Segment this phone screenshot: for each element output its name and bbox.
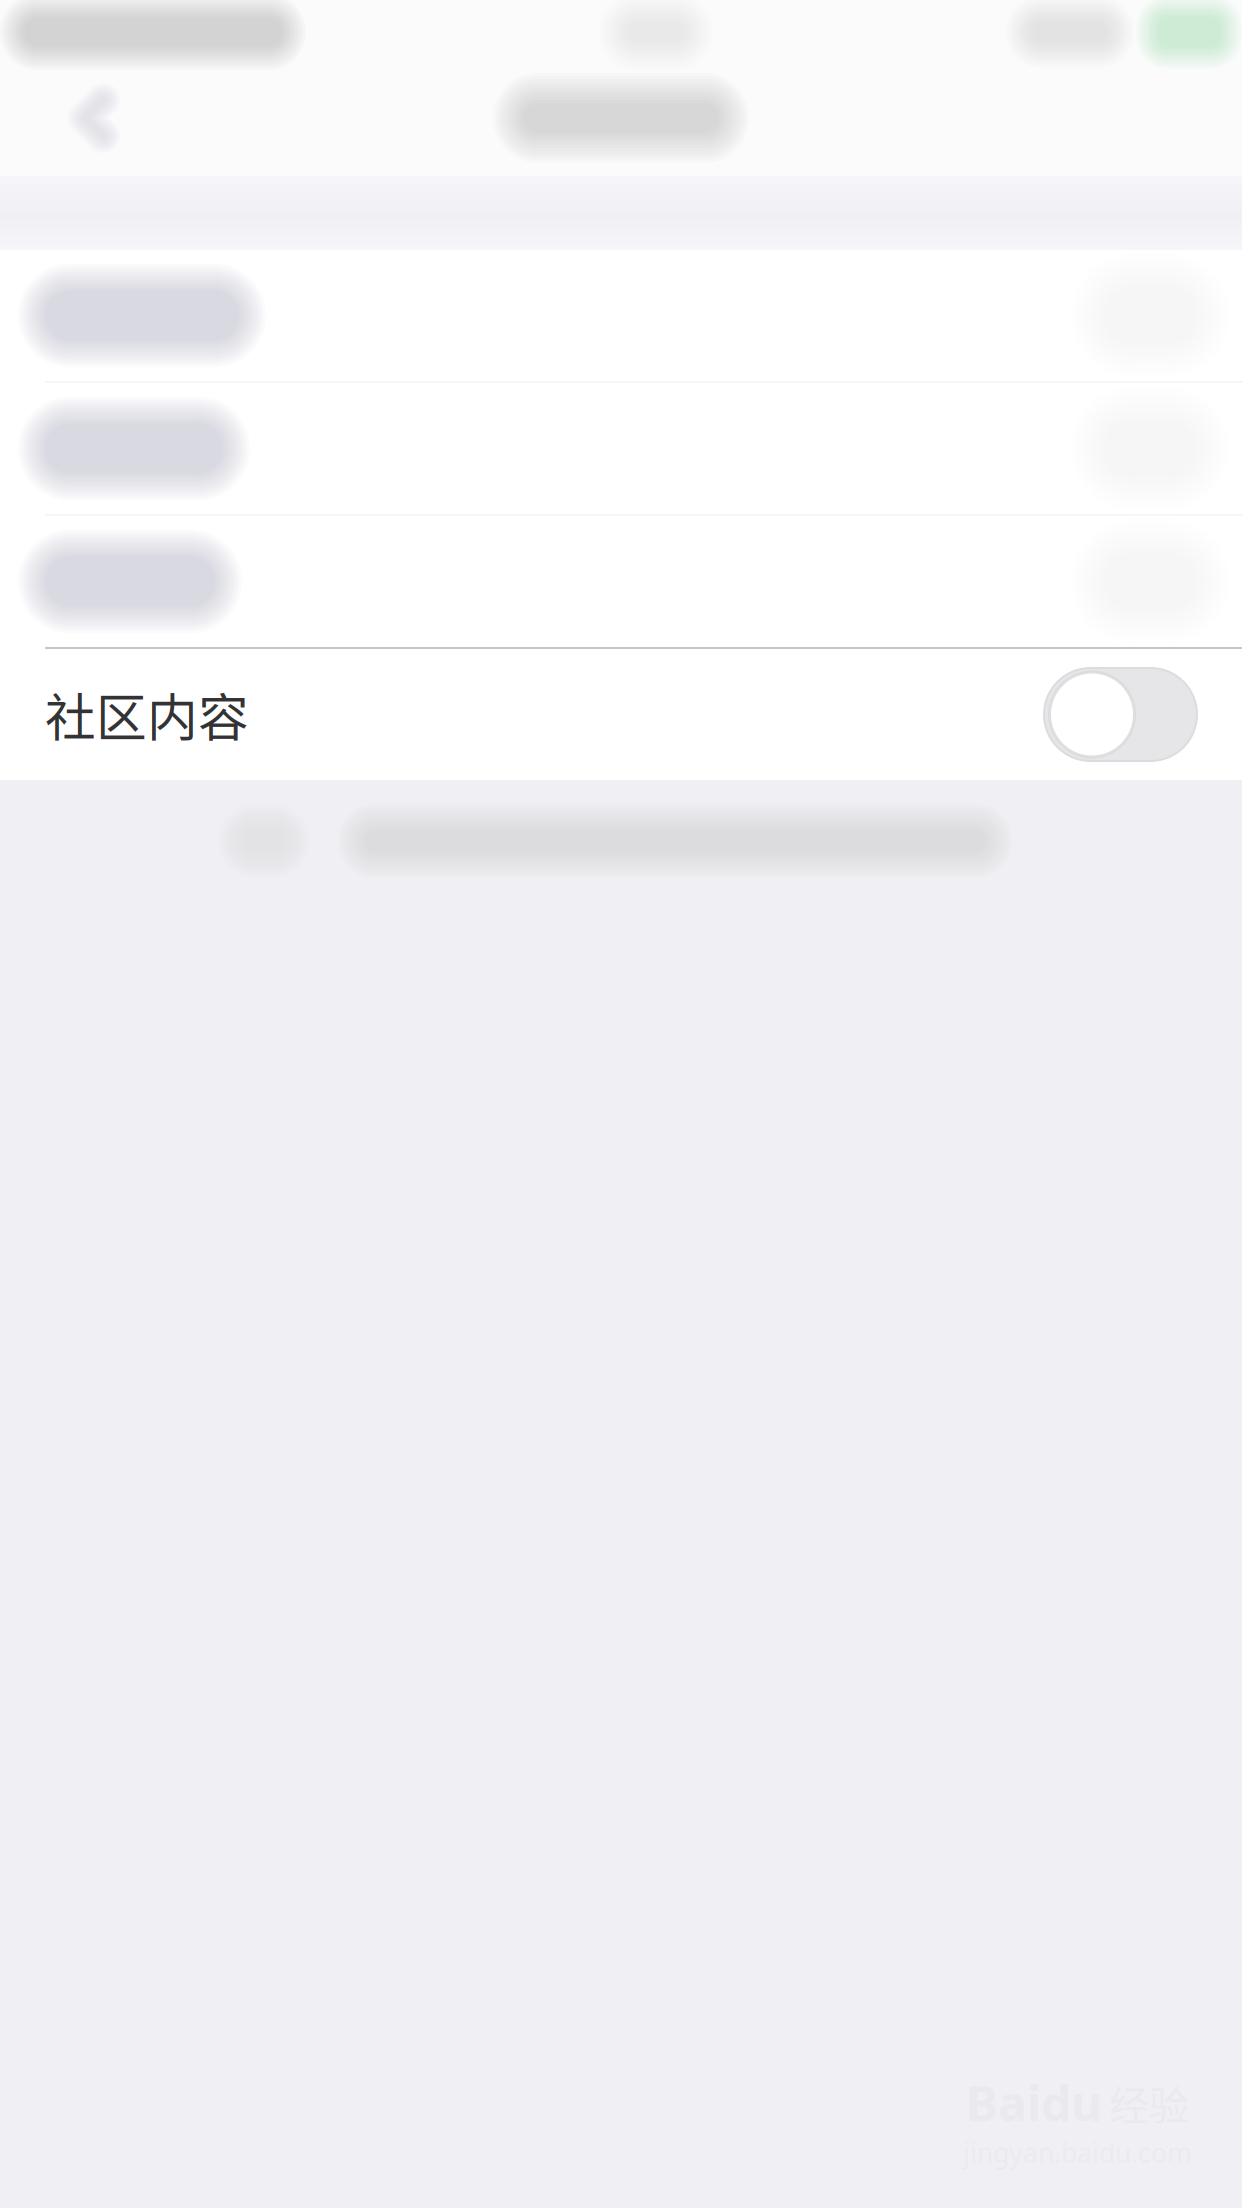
button[interactable] (0, 250, 1242, 381)
button[interactable] (0, 383, 1242, 514)
button[interactable]: Back (0, 62, 190, 174)
button[interactable]: 社区内容 (0, 649, 1242, 780)
staticText: 社区内容 (45, 678, 249, 751)
button[interactable] (0, 516, 1242, 647)
